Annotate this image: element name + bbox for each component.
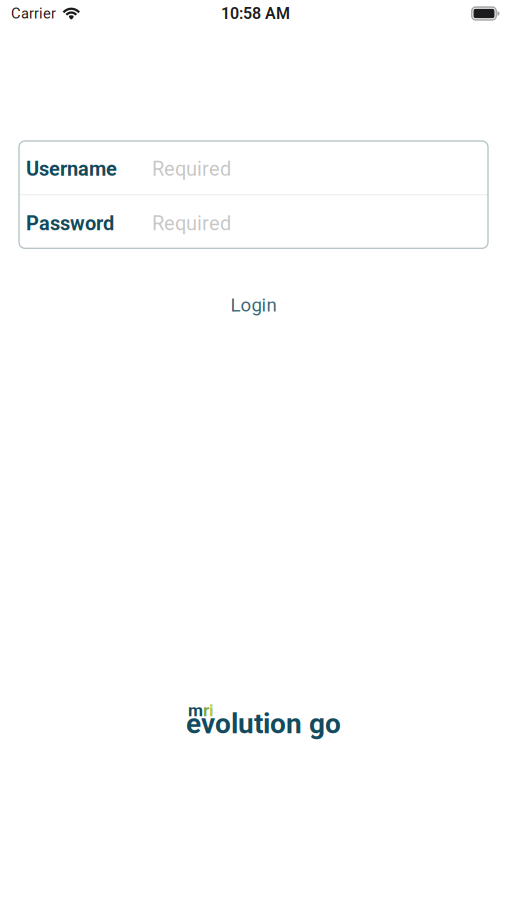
staticText: Login <box>230 294 276 316</box>
staticText: r <box>203 700 209 720</box>
staticText: Carrier <box>11 5 56 22</box>
staticText: Password <box>26 212 114 235</box>
staticText: Username <box>26 157 117 181</box>
button[interactable]: Login <box>206 290 300 320</box>
staticText: 10:58 AM <box>221 4 290 23</box>
button[interactable]: Password <box>19 195 488 248</box>
staticText: Required <box>152 157 231 181</box>
staticText: evolution go <box>186 707 341 740</box>
button[interactable]: Username <box>19 141 488 194</box>
staticText: m <box>188 700 203 720</box>
staticText: Required <box>152 212 231 235</box>
staticText: i <box>209 700 214 720</box>
